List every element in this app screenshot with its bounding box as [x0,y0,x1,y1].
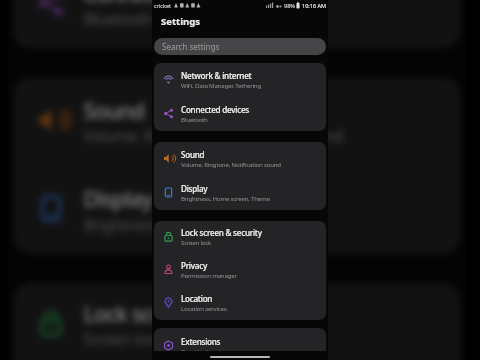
staticText: Connected devices [83,0,260,7]
button[interactable]: Network & internet [154,63,326,97]
staticText: Extensions [181,336,221,347]
button[interactable]: Location [154,287,326,320]
staticText: Good Lock, extras [181,347,229,351]
button[interactable]: Connected devices [154,97,326,131]
button[interactable]: Display [13,166,460,254]
staticText: Screen lock [83,327,164,348]
button[interactable]: Privacy [154,254,326,287]
staticText: Sound [83,95,146,124]
staticText: 10:16 AM [302,2,326,9]
staticText: Privacy [181,260,207,271]
button[interactable]: Display [154,176,326,210]
staticText: Search settings [162,41,220,52]
staticText: Sound [181,149,205,160]
button[interactable]: Lock screen & security [13,283,460,360]
staticText: Lock screen & security [181,227,262,238]
button[interactable]: Search settings [154,38,326,55]
staticText: Bluetooth [83,7,154,28]
staticText: cricket [154,2,171,9]
staticText: Location [181,293,213,304]
button[interactable]: Sound [13,77,460,166]
staticText: Volume, Ringtone, Notification sound [83,124,343,145]
staticText: Connected devices [181,104,249,115]
staticText: Display [83,184,154,212]
staticText: WiFi, Data Manager, Tethering [181,81,261,89]
button[interactable]: Extensions [154,329,326,351]
staticText: Permission manager [181,271,237,279]
staticText: Settings [161,15,200,28]
button[interactable]: Connected devices [13,0,460,49]
staticText: Location services. [181,304,228,312]
button[interactable]: Sound [154,142,326,176]
staticText: Brightness, Home screen, Theme [181,194,270,202]
staticText: Brightness, Home screen, Theme [83,212,315,233]
staticText: Screen lock [181,238,212,246]
staticText: Network & internet [181,70,252,81]
staticText: 98% [284,2,295,9]
staticText: Display [181,183,208,194]
staticText: Bluetooth [181,115,208,123]
staticText: Lock screen & security [83,298,294,327]
button[interactable]: Lock screen & security [154,221,326,254]
staticText: Volume, Ringtone, Notification sound [181,160,281,168]
